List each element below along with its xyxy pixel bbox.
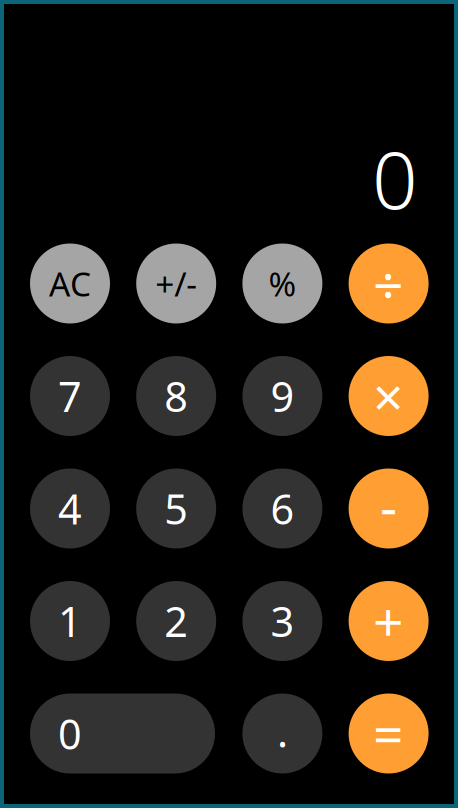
staticText: 5: [164, 481, 188, 536]
button[interactable]: Equals: [349, 693, 429, 773]
button[interactable]: 2: [136, 581, 216, 661]
staticText: 6: [270, 481, 294, 536]
staticText: 3: [270, 594, 294, 648]
staticText: ×: [373, 361, 404, 431]
staticText: =: [373, 698, 404, 769]
staticText: 0: [372, 125, 418, 231]
button[interactable]: Divide: [349, 243, 429, 323]
button[interactable]: Percent: [242, 243, 322, 323]
staticText: 9: [270, 369, 294, 423]
staticText: 8: [164, 369, 188, 423]
staticText: 4: [58, 481, 82, 536]
button[interactable]: 1: [30, 581, 110, 661]
button[interactable]: 6: [242, 468, 322, 548]
button[interactable]: Subtract: [349, 468, 429, 548]
button[interactable]: Toggle sign: [136, 243, 216, 323]
staticText: 7: [58, 369, 82, 423]
button[interactable]: 7: [30, 356, 110, 436]
button[interactable]: All clear: [30, 243, 110, 323]
staticText: +: [373, 586, 404, 656]
button[interactable]: 0: [30, 693, 215, 773]
button[interactable]: 3: [242, 581, 322, 661]
staticText: 0: [58, 706, 82, 761]
button[interactable]: 9: [242, 356, 322, 436]
staticText: .: [277, 704, 288, 759]
button[interactable]: 8: [136, 356, 216, 436]
staticText: 1: [58, 594, 82, 648]
staticText: +/-: [155, 261, 197, 306]
button[interactable]: 4: [30, 468, 110, 548]
staticText: %: [268, 261, 296, 306]
staticText: ÷: [373, 248, 404, 319]
button[interactable]: Decimal point: [242, 693, 322, 773]
staticText: AC: [49, 261, 91, 306]
button[interactable]: Multiply: [349, 356, 429, 436]
button[interactable]: Add: [349, 581, 429, 661]
button[interactable]: 5: [136, 468, 216, 548]
staticText: -: [380, 470, 397, 541]
staticText: 2: [164, 594, 188, 648]
